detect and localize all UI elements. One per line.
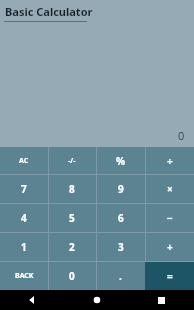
staticText: 9: [118, 182, 124, 196]
button[interactable]: .: [96, 262, 145, 290]
staticText: 6: [118, 211, 124, 225]
button[interactable]: AC: [0, 147, 48, 174]
staticText: −: [167, 211, 173, 225]
staticText: 0: [69, 269, 75, 283]
staticText: 3: [118, 240, 124, 254]
button[interactable]: 7: [0, 175, 48, 203]
button[interactable]: Back: [0, 290, 64, 310]
staticText: AC: [19, 156, 29, 166]
staticText: 8: [69, 182, 75, 196]
button[interactable]: 1: [0, 233, 48, 261]
staticText: 0: [178, 128, 185, 143]
staticText: Basic Calculator: [5, 4, 93, 19]
button[interactable]: 5: [48, 204, 96, 232]
button[interactable]: =: [145, 262, 194, 290]
button[interactable]: Recents: [129, 290, 194, 310]
button[interactable]: 2: [48, 233, 96, 261]
button[interactable]: 0: [48, 262, 96, 290]
button[interactable]: −: [145, 204, 194, 232]
button[interactable]: %: [96, 147, 145, 174]
staticText: 1: [21, 240, 27, 254]
staticText: 2: [69, 240, 75, 254]
staticText: %: [116, 154, 126, 168]
button[interactable]: 4: [0, 204, 48, 232]
staticText: +: [167, 240, 173, 254]
button[interactable]: +: [145, 233, 194, 261]
button[interactable]: BACK: [0, 262, 48, 290]
staticText: BACK: [15, 271, 34, 281]
staticText: 4: [21, 211, 27, 225]
button[interactable]: -/-: [48, 147, 96, 174]
staticText: 5: [69, 211, 75, 225]
button[interactable]: 3: [96, 233, 145, 261]
staticText: 7: [21, 182, 27, 196]
staticText: =: [167, 269, 173, 283]
staticText: -/-: [68, 156, 76, 166]
button[interactable]: ÷: [145, 147, 194, 174]
button[interactable]: Home: [64, 290, 129, 310]
button[interactable]: ×: [145, 175, 194, 203]
button[interactable]: 6: [96, 204, 145, 232]
staticText: ÷: [167, 154, 173, 168]
staticText: .: [119, 269, 122, 283]
button[interactable]: 8: [48, 175, 96, 203]
button[interactable]: 9: [96, 175, 145, 203]
staticText: ×: [167, 182, 173, 196]
